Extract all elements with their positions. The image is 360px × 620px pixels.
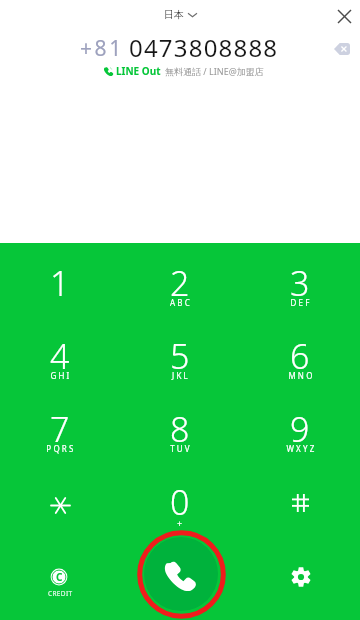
staticText: 5 — [170, 333, 190, 379]
staticText: C — [56, 570, 63, 584]
staticText: DEF — [290, 297, 312, 308]
button[interactable]: 4 — [0, 334, 120, 407]
staticText: TUV — [170, 443, 192, 454]
button[interactable]: Close — [328, 0, 360, 32]
button[interactable]: 5 — [120, 334, 240, 407]
staticText: 2 — [170, 260, 190, 306]
staticText: 8 — [170, 406, 190, 452]
button[interactable]: Star — [0, 480, 120, 553]
staticText: 4 — [50, 333, 70, 379]
button[interactable]: 3 — [240, 261, 360, 334]
button[interactable]: 9 — [240, 407, 360, 480]
staticText: 0473808888 — [129, 31, 279, 64]
staticText: 0 — [170, 479, 190, 525]
staticText: CREDIT — [48, 589, 73, 598]
button[interactable]: Settings — [240, 553, 360, 620]
staticText: PQRS — [46, 443, 76, 454]
staticText: JKL — [172, 370, 190, 381]
button[interactable]: 7 — [0, 407, 120, 480]
staticText: 3 — [290, 260, 310, 306]
button[interactable]: Call — [144, 537, 218, 611]
button[interactable]: 0 — [120, 480, 240, 553]
button[interactable]: 日本 — [164, 8, 197, 21]
staticText: WXYZ — [286, 443, 317, 454]
staticText: +81 — [80, 34, 124, 63]
button[interactable]: 6 — [240, 334, 360, 407]
button[interactable]: Backspace — [326, 33, 357, 64]
staticText: ABC — [170, 297, 192, 308]
staticText: LINE Out — [116, 64, 161, 78]
staticText: 日本 — [164, 8, 184, 21]
staticText: 6 — [290, 333, 310, 379]
button[interactable]: 8 — [120, 407, 240, 480]
staticText: 7 — [50, 406, 70, 452]
staticText: MNO — [288, 370, 315, 381]
button[interactable]: Pound — [240, 480, 360, 553]
staticText: 1 — [50, 260, 70, 306]
staticText: 9 — [290, 406, 310, 452]
button[interactable]: 2 — [120, 261, 240, 334]
staticText: 無料通話 / LINE@加盟店 — [165, 65, 264, 77]
button[interactable]: C — [0, 553, 120, 620]
button[interactable]: 1 — [0, 261, 120, 334]
staticText: + — [177, 517, 183, 529]
staticText: GHI — [50, 370, 72, 381]
